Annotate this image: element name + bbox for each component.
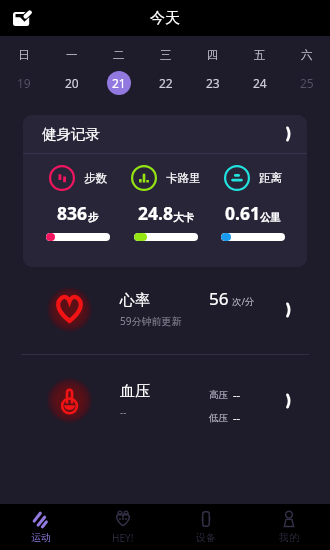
staticText: 公里 [260, 211, 281, 224]
staticText: 大卡 [173, 211, 194, 224]
staticText: 0.61 [225, 201, 260, 225]
staticText: -- [233, 387, 241, 402]
staticText: 六 [301, 48, 313, 62]
button[interactable]: 23 [189, 70, 236, 96]
button[interactable]: HEY! [82, 504, 164, 550]
staticText: 心率 [120, 291, 150, 310]
button[interactable]: 设备 [164, 504, 247, 550]
staticText: 25 [300, 75, 314, 91]
button[interactable]: 运动 [0, 504, 82, 550]
staticText: 836 [57, 201, 88, 225]
staticText: 20 [65, 75, 79, 91]
button[interactable]: 24 [236, 70, 283, 96]
staticText: 22 [159, 75, 173, 91]
staticText: 19 [17, 75, 31, 91]
staticText: 运动 [31, 531, 51, 544]
button[interactable]: 25 [283, 70, 330, 96]
staticText: HEY! [112, 531, 134, 545]
staticText: 今天 [150, 9, 180, 28]
staticText: -- [233, 410, 241, 425]
button[interactable]: 21 [95, 70, 142, 96]
staticText: 三 [160, 48, 172, 62]
staticText: 一 [66, 48, 78, 62]
staticText: 我的 [279, 531, 299, 544]
staticText: 低压 [209, 412, 228, 424]
staticText: 步数 [84, 171, 107, 185]
staticText: 四 [207, 48, 219, 62]
staticText: 56 [209, 287, 229, 310]
staticText: 血压 [120, 382, 150, 401]
button[interactable]: 22 [142, 70, 189, 96]
button[interactable]: 血压 [0, 358, 330, 443]
button[interactable]: Edit notes [11, 7, 33, 29]
staticText: 21 [112, 75, 126, 91]
staticText: 日 [18, 48, 30, 62]
staticText: 23 [206, 75, 220, 91]
button[interactable]: 19 [0, 70, 48, 96]
staticText: 二 [113, 48, 125, 62]
button[interactable]: 我的 [247, 504, 330, 550]
button[interactable]: 心率 [0, 267, 330, 352]
staticText: 高压 [209, 389, 228, 401]
staticText: 步 [88, 211, 99, 224]
staticText: 距离 [259, 171, 282, 185]
button[interactable]: 健身记录 [23, 115, 307, 267]
staticText: 59分钟前更新 [120, 314, 182, 328]
staticText: 24 [253, 75, 267, 91]
button[interactable]: 20 [48, 70, 95, 96]
staticText: -- [120, 405, 127, 419]
staticText: 设备 [196, 531, 216, 544]
staticText: 卡路里 [166, 171, 201, 185]
staticText: 健身记录 [42, 125, 100, 143]
staticText: 次/分 [232, 295, 255, 308]
staticText: 24.8 [138, 201, 173, 225]
staticText: 五 [254, 48, 266, 62]
